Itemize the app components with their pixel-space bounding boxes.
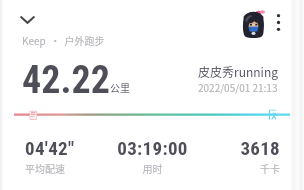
button[interactable]: More options: [268, 8, 289, 36]
staticText: 皮皮秀running: [198, 63, 278, 80]
staticText: 03:19:00: [110, 137, 195, 159]
staticText: 3618: [195, 137, 280, 159]
staticText: 平均配速: [25, 161, 110, 175]
button[interactable]: Profile avatar: [242, 10, 265, 38]
staticText: 2022/05/01 21:13: [198, 80, 278, 94]
button[interactable]: 04'42": [25, 137, 110, 175]
staticText: 公里: [110, 80, 130, 94]
button[interactable]: 03:19:00: [110, 137, 195, 175]
staticText: 千卡: [195, 161, 280, 175]
button[interactable]: Collapse: [13, 6, 42, 34]
staticText: 用时: [110, 161, 195, 175]
staticText: 42.22: [22, 58, 110, 103]
staticText: 04'42": [25, 137, 110, 159]
button[interactable]: 3618: [195, 137, 280, 175]
staticText: Keep · 户外跑步: [22, 33, 105, 47]
